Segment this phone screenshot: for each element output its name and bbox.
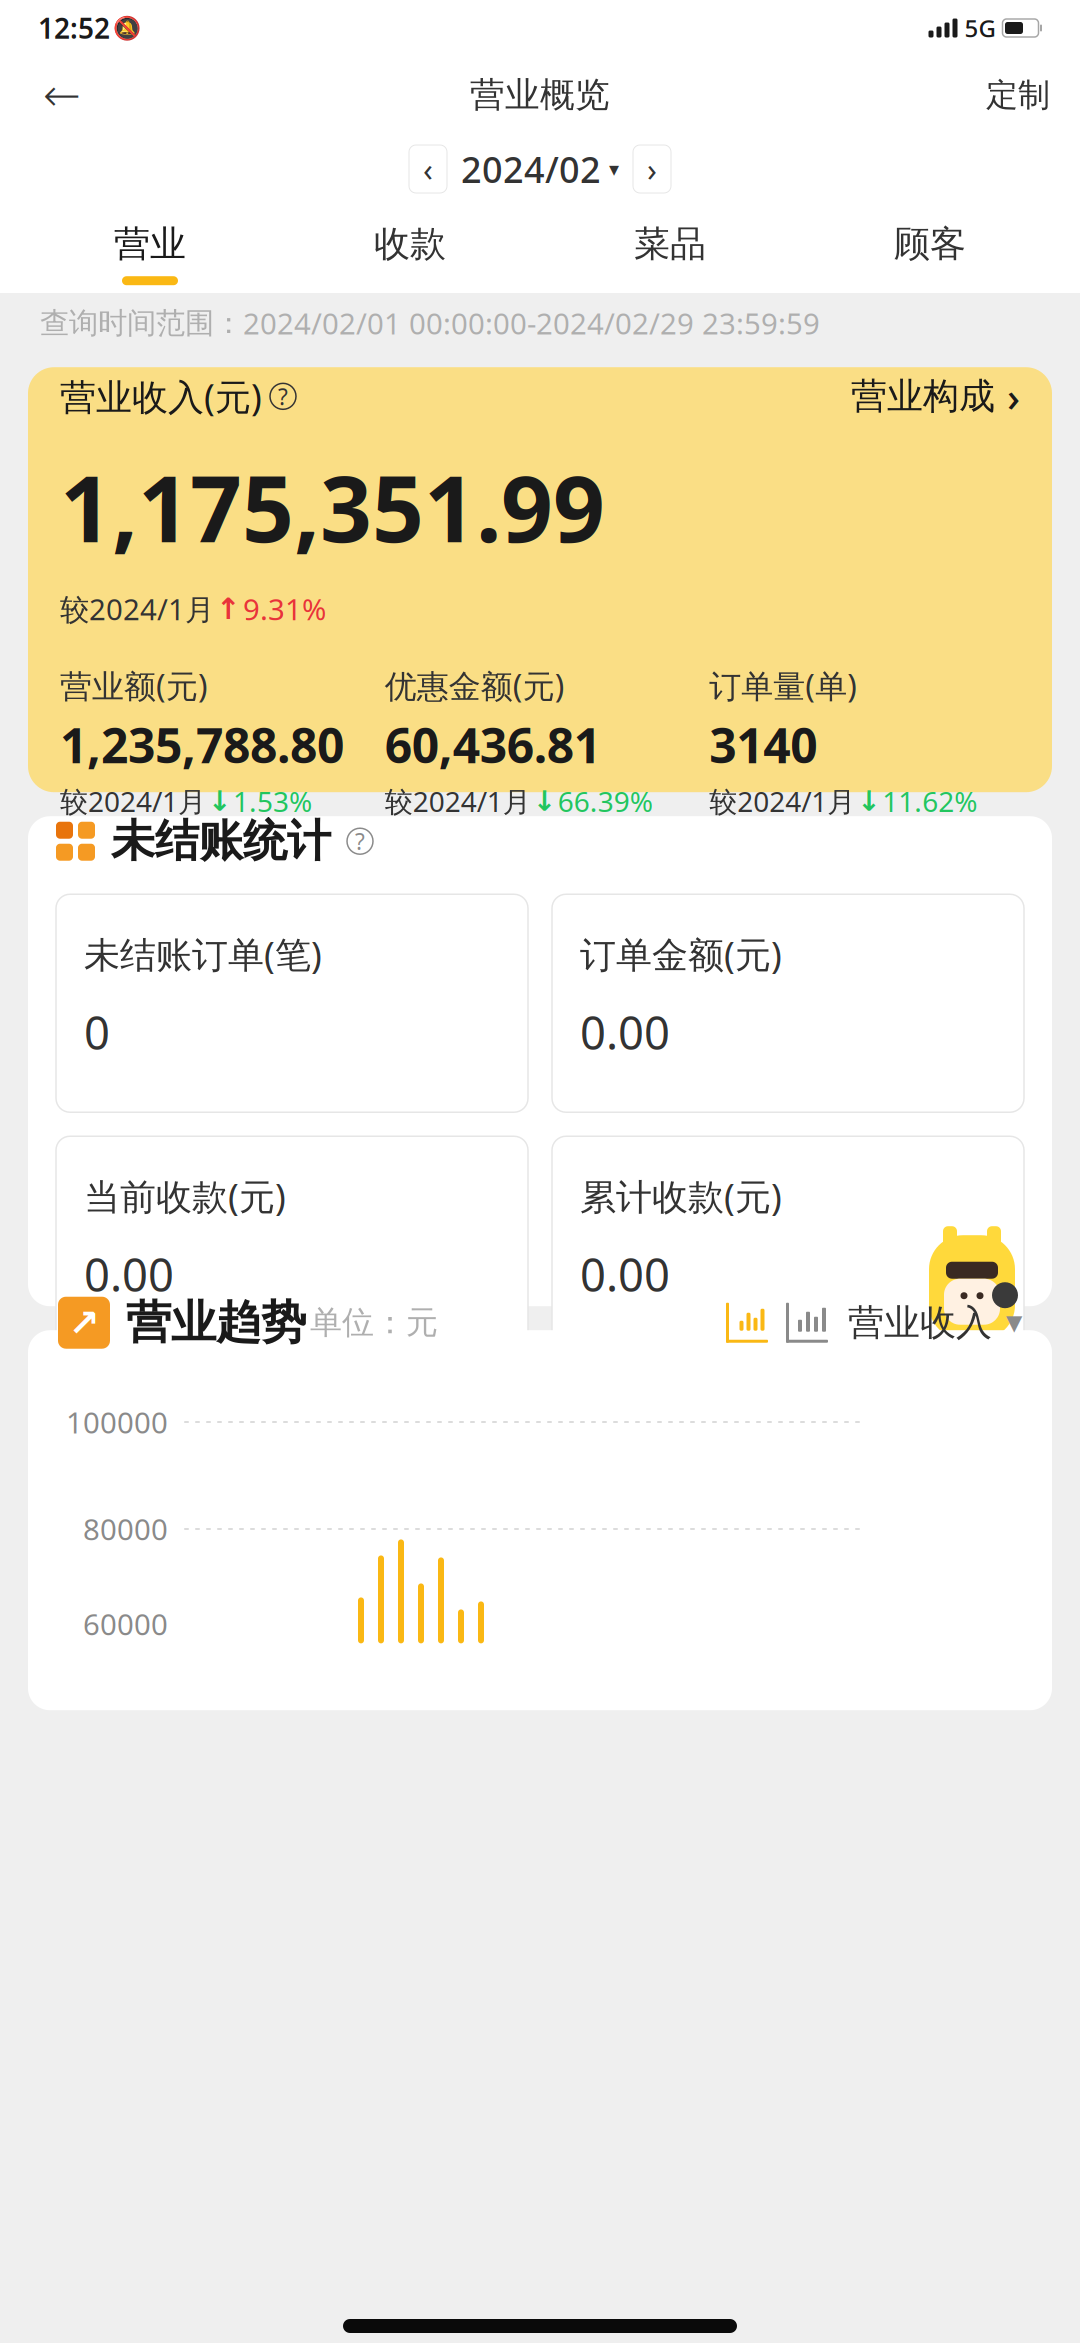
button[interactable]: 菜品 <box>540 204 800 293</box>
staticText: 2024/02 <box>461 145 601 193</box>
button[interactable]: 顾客 <box>800 204 1060 293</box>
button[interactable]: 营业 <box>20 204 280 293</box>
button[interactable]: 在线客服 <box>898 1226 1046 1390</box>
staticText: ↓ <box>857 785 880 817</box>
staticText: › <box>647 148 657 190</box>
button[interactable]: 柱状图 <box>786 1303 828 1343</box>
staticText: ▼ <box>1006 1311 1022 1335</box>
staticText: ? <box>355 826 365 856</box>
staticText: 收款 <box>374 222 446 266</box>
staticText: 营业 <box>114 222 186 266</box>
staticText: 较2024/1月 <box>385 782 531 820</box>
button[interactable]: 当前收款(元) <box>56 1136 528 1354</box>
button[interactable]: 收款 <box>280 204 540 293</box>
staticText: 0.00 <box>580 1244 670 1304</box>
staticText: 查询时间范围： <box>40 305 243 341</box>
button[interactable]: 上个月 <box>409 145 447 193</box>
staticText: 优惠金额(元) <box>385 664 565 707</box>
staticText: 单位：元 <box>310 1303 438 1342</box>
staticText: 订单量(单) <box>709 664 857 707</box>
staticText: 营业额(元) <box>60 664 208 707</box>
button[interactable]: 返回 <box>30 67 94 123</box>
button[interactable]: 累计收款(元) <box>552 1136 1024 1354</box>
staticText: 1,235,788.80 <box>60 713 344 776</box>
staticText: 营业收入 <box>848 1301 992 1345</box>
staticText: 营业构成 <box>851 374 995 418</box>
staticText: 🔕 <box>113 15 141 41</box>
button[interactable]: 营业收入 <box>848 1301 1022 1345</box>
staticText: 5G <box>964 12 995 44</box>
staticText: 较2024/1月 <box>709 782 855 820</box>
staticText: 营业概览 <box>470 74 610 116</box>
staticText: 100000 <box>66 1402 168 1441</box>
staticText: 0 <box>84 1002 110 1062</box>
staticText: 1.53% <box>233 782 312 820</box>
button[interactable]: 营业构成 <box>851 370 1020 423</box>
staticText: 顾客 <box>894 222 966 266</box>
button[interactable]: 折线图 <box>726 1303 768 1343</box>
staticText: 60000 <box>83 1604 168 1643</box>
staticText: 11.62% <box>882 782 977 820</box>
staticText: ↓ <box>533 785 556 817</box>
staticText: 营业收入(元) <box>60 372 262 420</box>
staticText: 60,436.81 <box>385 713 601 776</box>
staticText: ↑ <box>216 592 241 625</box>
staticText: 9.31% <box>243 589 326 628</box>
staticText: 未结账统计 <box>111 814 331 868</box>
staticText: ↓ <box>208 785 231 817</box>
staticText: 0.00 <box>84 1244 174 1304</box>
staticText: 未结账订单(笔) <box>84 930 322 978</box>
button[interactable]: 2024/02 <box>461 145 619 193</box>
button[interactable]: 未结账订单(笔) <box>56 894 528 1112</box>
button[interactable]: 定制 <box>986 67 1050 123</box>
staticText: 订单金额(元) <box>580 930 782 978</box>
staticText: 0.00 <box>580 1002 670 1062</box>
staticText: 2024/02/01 00:00:00-2024/02/29 23:59:59 <box>243 304 820 343</box>
staticText: 较2024/1月 <box>60 589 214 628</box>
staticText: 较2024/1月 <box>60 782 206 820</box>
staticText: 3140 <box>709 713 817 776</box>
staticText: ↗ <box>68 1301 99 1344</box>
staticText: ‹ <box>423 148 433 190</box>
staticText: 菜品 <box>634 222 706 266</box>
staticText: ▾ <box>609 158 619 180</box>
button[interactable]: 订单金额(元) <box>552 894 1024 1112</box>
staticText: › <box>1007 370 1020 423</box>
staticText: 1,175,351.99 <box>60 447 605 567</box>
staticText: 累计收款(元) <box>580 1172 782 1220</box>
staticText: ? <box>278 381 288 411</box>
staticText: 当前收款(元) <box>84 1172 286 1220</box>
staticText: ← <box>43 69 81 121</box>
staticText: 66.39% <box>558 782 653 820</box>
staticText: 12:52 <box>38 9 110 47</box>
button[interactable]: 下个月 <box>633 145 671 193</box>
staticText: 80000 <box>83 1509 168 1548</box>
staticText: 定制 <box>986 75 1050 115</box>
staticText: 营业趋势 <box>126 1295 306 1351</box>
